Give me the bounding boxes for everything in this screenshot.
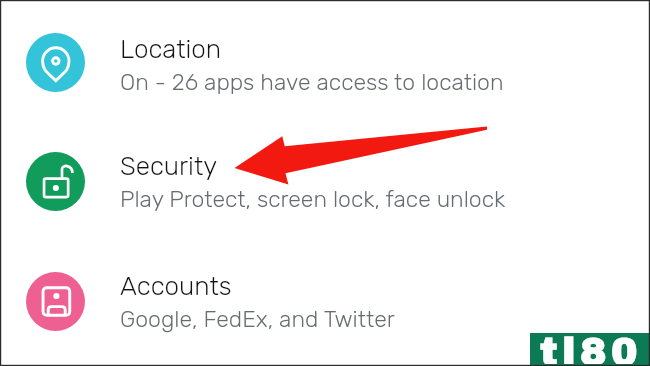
staticText: On - 26 apps have access to location	[120, 68, 504, 95]
staticText: tl80	[540, 333, 643, 364]
staticText: Google, FedEx, and Twitter	[120, 305, 395, 332]
staticText: Location	[120, 34, 222, 65]
button[interactable]: Location settings	[0, 15, 650, 111]
staticText: Accounts	[120, 271, 232, 302]
button[interactable]: Accounts settings	[0, 254, 650, 350]
staticText: Play Protect, screen lock, face unlock	[120, 185, 506, 212]
button[interactable]: Security settings	[0, 134, 650, 230]
staticText: Security	[120, 151, 218, 182]
